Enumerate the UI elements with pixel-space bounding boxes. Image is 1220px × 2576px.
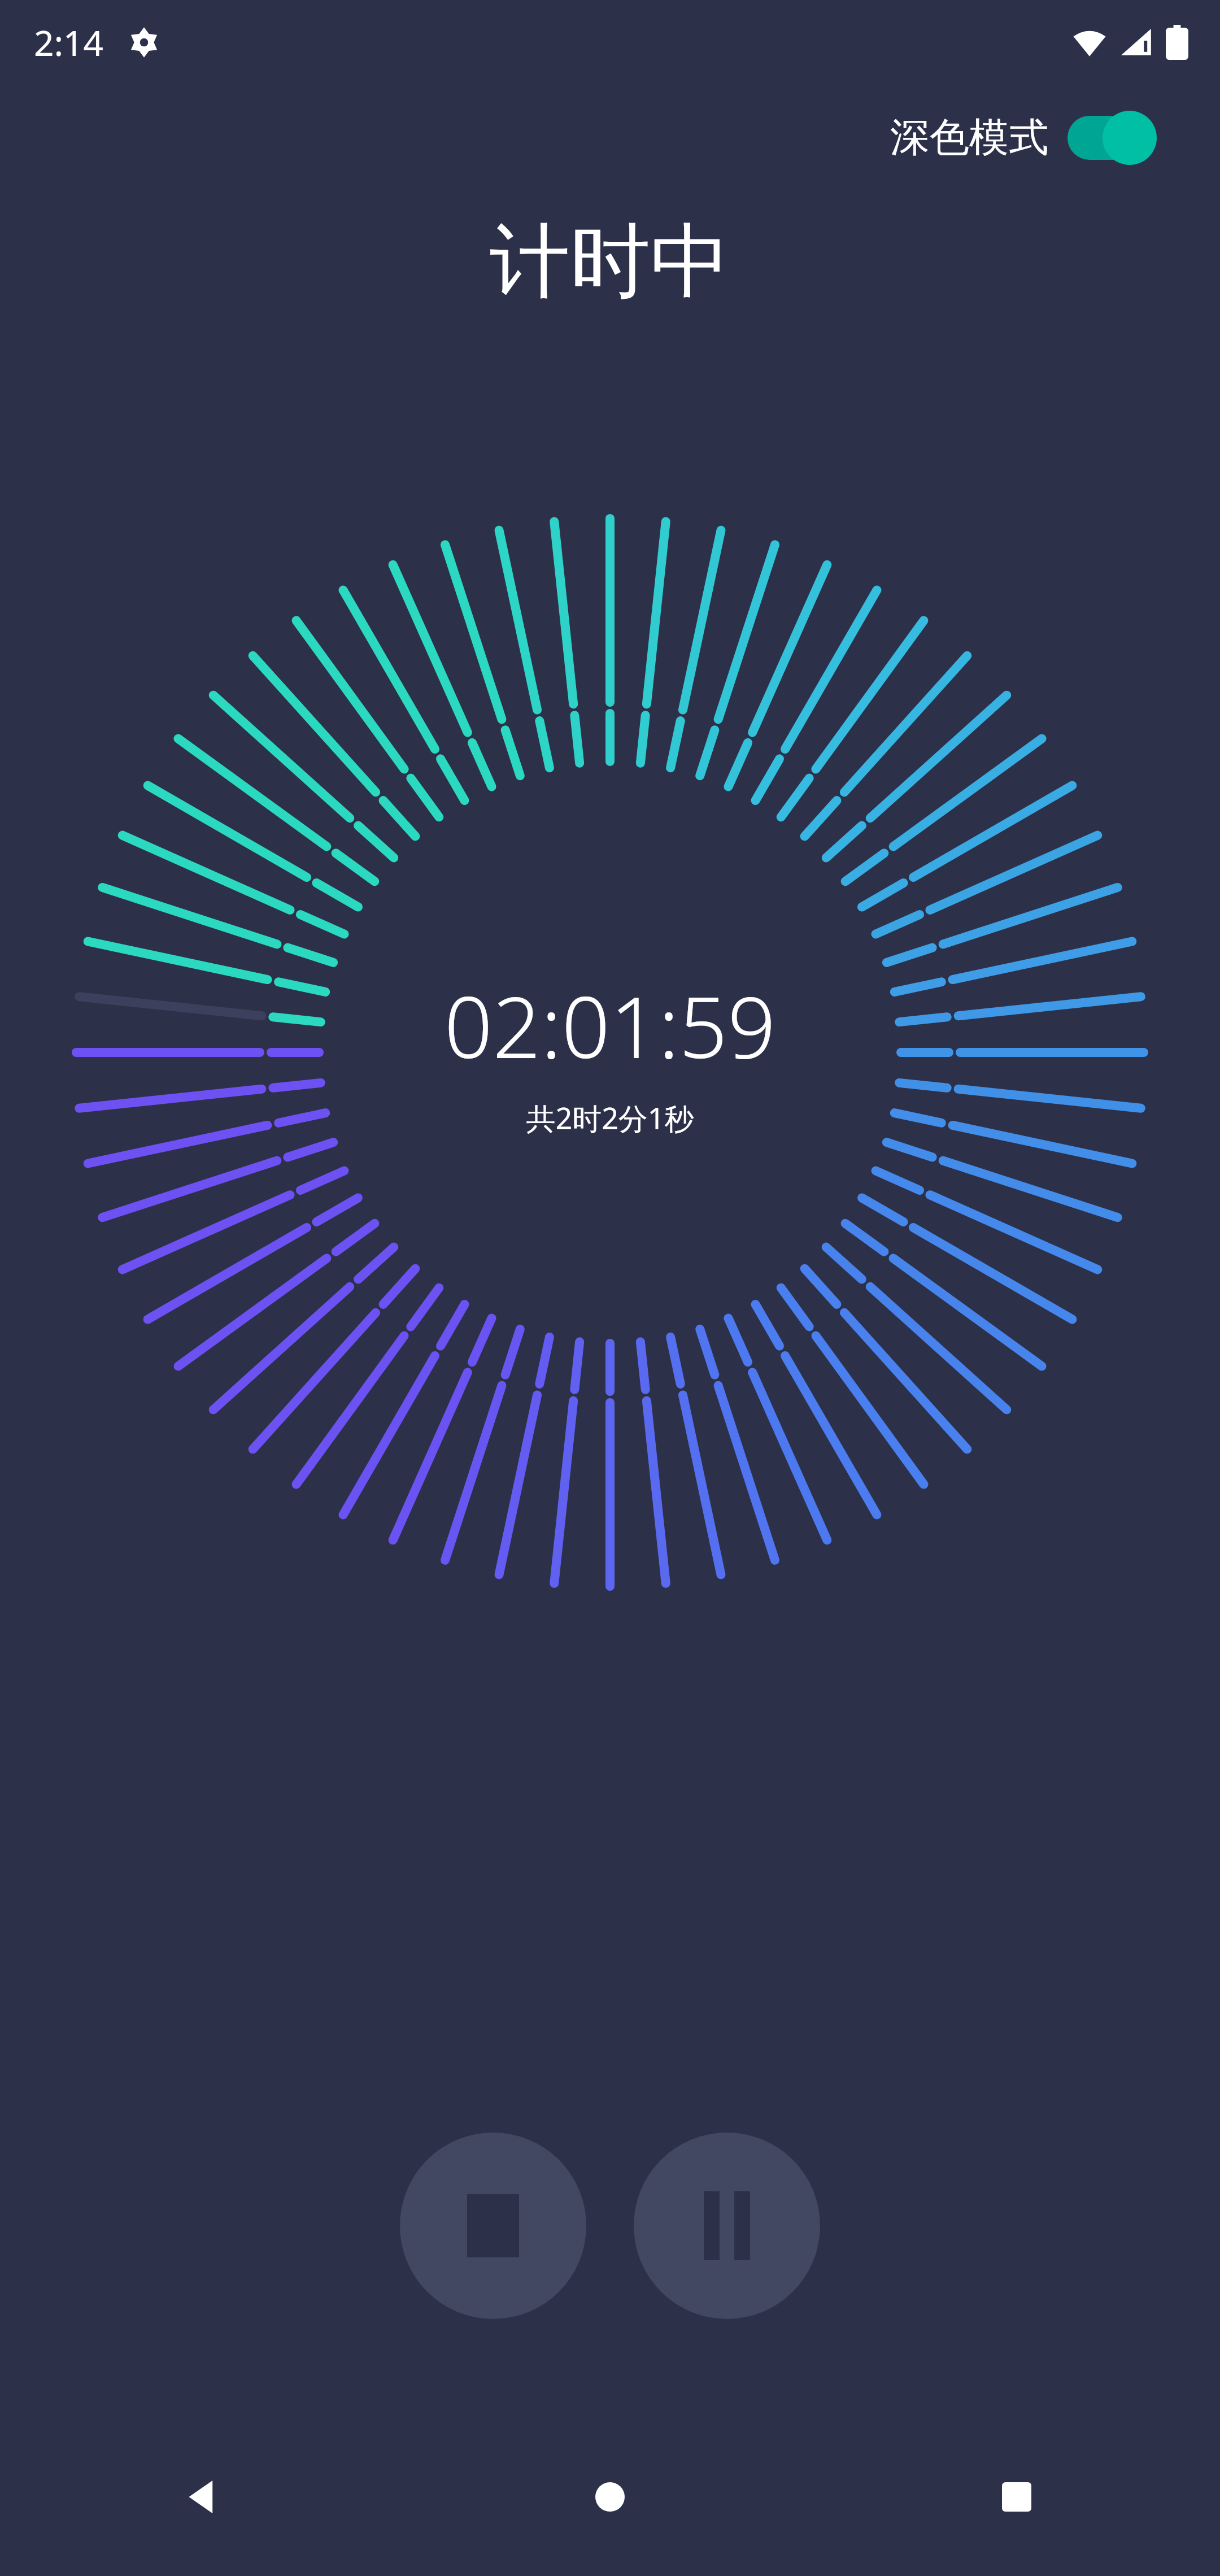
button[interactable]: Settings [128, 26, 160, 59]
button[interactable]: Pause [634, 2133, 820, 2319]
button[interactable]: Home [568, 2455, 652, 2539]
button[interactable]: Recent apps [974, 2455, 1059, 2539]
staticText: 共2时2分1秒 [526, 1098, 694, 1138]
staticText: 2:14 [34, 19, 104, 66]
staticText: 02:01:59 [444, 968, 776, 1083]
button[interactable]: Stop [400, 2133, 586, 2319]
staticText: 深色模式 [890, 113, 1048, 163]
button[interactable]: 深色模式 [884, 105, 1164, 171]
staticText: 计时中 [0, 211, 1220, 312]
button[interactable]: Back [161, 2455, 246, 2539]
